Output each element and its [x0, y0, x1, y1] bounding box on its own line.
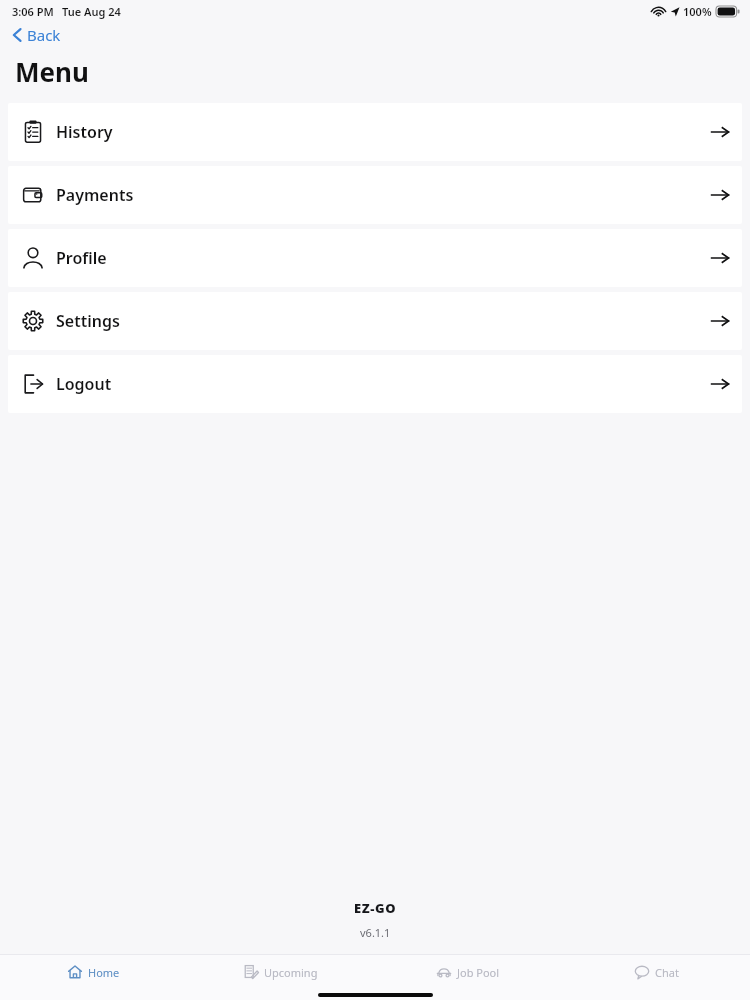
button[interactable]: Job Pool [374, 955, 562, 989]
button[interactable]: Settings [8, 292, 742, 350]
button[interactable]: History [8, 103, 742, 161]
staticText: Upcoming [264, 965, 318, 980]
staticText: Tue Aug 24 [62, 4, 121, 19]
staticText: 3:06 PM [12, 4, 54, 19]
staticText: Menu [15, 54, 89, 89]
staticText: Back [27, 25, 61, 45]
button[interactable]: Back [8, 22, 65, 48]
staticText: History [56, 121, 113, 143]
button[interactable]: Payments [8, 166, 742, 224]
staticText: Payments [56, 184, 134, 206]
button[interactable]: Logout [8, 355, 742, 413]
staticText: v6.1.1 [360, 925, 391, 940]
button[interactable]: Chat [562, 955, 750, 989]
staticText: EZ-GO [354, 899, 397, 917]
staticText: Chat [655, 965, 679, 980]
button[interactable]: Upcoming [187, 955, 374, 989]
staticText: 100% [683, 4, 712, 19]
button[interactable]: Profile [8, 229, 742, 287]
button[interactable]: Home [0, 955, 187, 989]
staticText: Logout [56, 373, 112, 395]
staticText: Profile [56, 247, 107, 269]
staticText: Settings [56, 310, 120, 332]
staticText: Job Pool [457, 965, 500, 980]
staticText: Home [88, 965, 120, 980]
